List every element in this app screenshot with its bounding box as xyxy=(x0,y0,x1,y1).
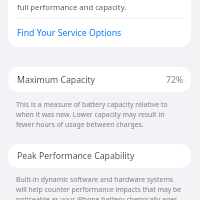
staticText: full performance and capacity. xyxy=(17,2,127,12)
staticText: Find Your Service Options xyxy=(17,27,122,39)
staticText: Maximum Capacity xyxy=(17,74,96,86)
staticText: This is a measure of battery capacity re… xyxy=(16,100,183,129)
staticText: Built-in dynamic software and hardware s… xyxy=(16,175,183,200)
button[interactable]: Peak Performance Capability xyxy=(8,144,191,168)
button[interactable]: Maximum Capacity xyxy=(8,67,191,92)
staticText: Peak Performance Capability xyxy=(17,150,135,162)
button[interactable]: Find Your Service Options xyxy=(8,19,191,46)
staticText: 72% xyxy=(166,74,184,86)
